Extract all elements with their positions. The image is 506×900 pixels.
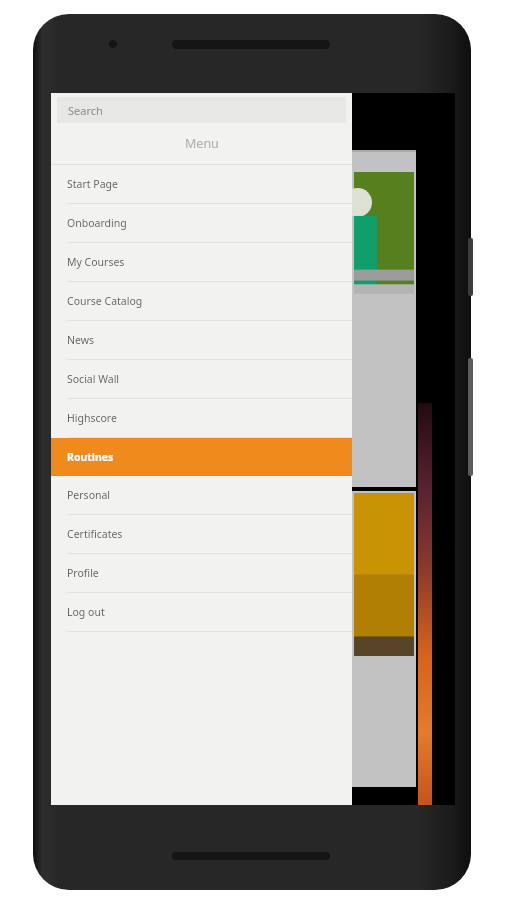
staticText: Personal <box>67 488 111 502</box>
button[interactable]: My Courses <box>51 243 352 281</box>
staticText: Course Catalog <box>67 294 143 308</box>
button[interactable]: Start Page <box>51 165 352 203</box>
staticText: Social Wall <box>67 372 120 386</box>
button[interactable]: News <box>51 321 352 359</box>
staticText: Menu <box>185 135 219 152</box>
other: Power button <box>468 238 473 296</box>
button[interactable]: Course Catalog <box>51 282 352 320</box>
staticText: Onboarding <box>67 216 127 230</box>
staticText: Log out <box>67 605 105 619</box>
other: Volume button <box>468 358 473 476</box>
staticText: News <box>67 333 94 347</box>
button[interactable]: Log out <box>51 593 352 631</box>
button[interactable]: Certificates <box>51 515 352 553</box>
button[interactable]: Personal <box>51 476 352 514</box>
staticText: Routines <box>67 450 114 464</box>
staticText: Profile <box>67 566 99 580</box>
staticText: Start Page <box>67 177 118 191</box>
button[interactable]: Highscore <box>51 399 352 437</box>
staticText: Certificates <box>67 527 123 541</box>
staticText: Highscore <box>67 411 117 425</box>
staticText: My Courses <box>67 255 125 269</box>
button[interactable]: Onboarding <box>51 204 352 242</box>
button[interactable]: Routines <box>51 438 352 476</box>
button[interactable]: Profile <box>51 554 352 592</box>
button[interactable]: Social Wall <box>51 360 352 398</box>
button[interactable]: Search <box>57 97 346 123</box>
staticText: Search <box>68 103 103 118</box>
